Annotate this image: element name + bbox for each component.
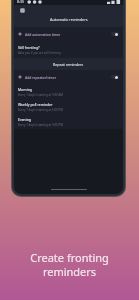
staticText: Morning [18,87,32,92]
button[interactable]: Still fronting? [14,41,123,58]
button[interactable]: Morning [14,84,123,99]
staticText: Asks you if you are still fronting [18,51,61,55]
button[interactable]: Evening [14,114,123,129]
staticText: Add repeated timer [25,75,57,80]
button[interactable]: Navigate up [19,7,26,14]
staticText: Every 1 day(s) starting at 9:00 PM [18,123,63,127]
staticText: Weekly poll reminder [18,102,53,107]
button[interactable]: Add automation timer [14,27,123,41]
staticText: Evening [18,117,31,122]
button[interactable]: Toggle Add automation timer [111,32,119,36]
staticText: Every 1 day(s) starting at 9:00 AM [18,93,63,97]
staticText: Every 7 day(s) starting at 6:00 PM [18,108,63,112]
staticText: Still fronting? [18,45,40,50]
button[interactable]: Add repeated timer [14,70,123,84]
button[interactable]: Toggle Add repeated timer [111,75,119,79]
staticText: Repeat reminders [53,62,84,67]
staticText: Create fronting reminders [0,250,139,279]
staticText: Add automation timer [25,32,61,37]
staticText: Automatic reminders [50,17,88,22]
staticText: 8:35 [17,0,25,4]
button[interactable]: Weekly poll reminder [14,99,123,114]
